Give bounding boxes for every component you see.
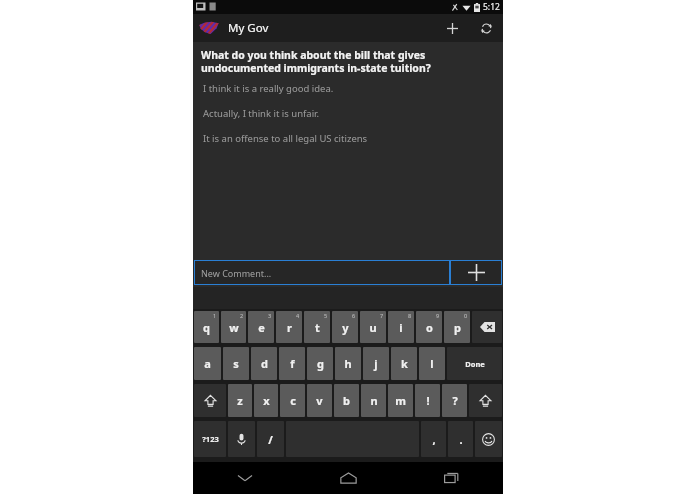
staticText: 9 — [436, 312, 440, 319]
staticText: 2 — [240, 312, 244, 319]
button[interactable]: n — [361, 384, 386, 417]
button[interactable]: ? — [442, 384, 467, 417]
button[interactable]: Voice input — [228, 421, 255, 457]
button[interactable]: c — [280, 384, 305, 417]
button[interactable]: t — [304, 311, 330, 343]
staticText: h — [344, 356, 352, 371]
staticText: / — [268, 432, 273, 447]
button[interactable]: e — [248, 311, 274, 343]
button[interactable]: y — [332, 311, 358, 343]
staticText: e — [258, 320, 265, 335]
button[interactable]: p — [444, 311, 470, 343]
button[interactable]: q — [194, 311, 219, 343]
button[interactable]: f — [279, 347, 305, 380]
staticText: n — [370, 393, 378, 408]
button[interactable]: d — [251, 347, 277, 380]
staticText: r — [287, 320, 292, 335]
button[interactable]: h — [335, 347, 361, 380]
button[interactable]: u — [360, 311, 386, 343]
button[interactable]: l — [419, 347, 445, 380]
button[interactable]: v — [307, 384, 332, 417]
staticText: z — [237, 393, 243, 408]
button[interactable]: Shift — [469, 384, 502, 417]
staticText: ?123 — [202, 434, 219, 444]
button[interactable]: s — [223, 347, 249, 380]
staticText: k — [401, 356, 408, 371]
staticText: 7 — [380, 312, 384, 319]
button[interactable]: g — [307, 347, 333, 380]
button[interactable]: Post comment — [450, 260, 502, 285]
button[interactable]: New Comment... — [194, 260, 450, 285]
staticText: m — [395, 393, 406, 408]
staticText: . — [459, 432, 463, 447]
button[interactable]: . — [448, 421, 473, 457]
staticText: 6 — [352, 312, 356, 319]
staticText: j — [374, 356, 378, 371]
button[interactable]: j — [363, 347, 389, 380]
button[interactable]: w — [221, 311, 246, 343]
staticText: ? — [452, 393, 458, 408]
button[interactable]: / — [257, 421, 284, 457]
staticText: f — [290, 356, 295, 371]
staticText: I think it is a really good idea. — [203, 82, 334, 95]
staticText: It is an offense to all legal US citizen… — [203, 132, 368, 145]
button[interactable]: o — [416, 311, 442, 343]
staticText: t — [315, 320, 320, 335]
button[interactable]: Recent apps — [400, 462, 503, 494]
staticText: i — [399, 320, 403, 335]
staticText: c — [290, 393, 296, 408]
staticText: What do you think about the bill that gi… — [201, 48, 495, 75]
button[interactable]: Refresh — [469, 14, 503, 42]
button[interactable]: Hide keyboard — [193, 462, 297, 494]
button[interactable]: It is an offense to all legal US citizen… — [201, 132, 495, 145]
staticText: , — [432, 432, 436, 447]
staticText: y — [342, 320, 349, 335]
staticText: ! — [426, 393, 430, 408]
button[interactable]: Shift — [194, 384, 226, 417]
staticText: 0 — [464, 312, 468, 319]
button[interactable]: i — [388, 311, 414, 343]
button[interactable]: Delete — [472, 311, 502, 343]
staticText: 5 — [324, 312, 328, 319]
staticText: q — [203, 320, 210, 335]
staticText: o — [426, 320, 433, 335]
staticText: g — [317, 356, 324, 371]
button[interactable]: Add — [435, 14, 469, 42]
staticText: p — [454, 320, 461, 335]
button[interactable]: a — [194, 347, 221, 380]
staticText: l — [430, 356, 434, 371]
staticText: v — [316, 393, 323, 408]
staticText: 8 — [408, 312, 412, 319]
staticText: b — [343, 393, 350, 408]
staticText: w — [229, 320, 239, 335]
button[interactable]: , — [421, 421, 446, 457]
button[interactable]: b — [334, 384, 359, 417]
button[interactable]: m — [388, 384, 413, 417]
staticText: Actually, I think it is unfair. — [203, 107, 320, 120]
button[interactable]: r — [276, 311, 302, 343]
staticText: My Gov — [228, 20, 269, 36]
button[interactable]: Emoji — [475, 421, 502, 457]
staticText: 3 — [268, 312, 272, 319]
button[interactable]: k — [391, 347, 417, 380]
staticText: 1 — [213, 312, 217, 319]
staticText: 5:12 — [483, 1, 500, 13]
staticText: 4 — [296, 312, 300, 319]
button[interactable]: I think it is a really good idea. — [201, 82, 495, 95]
staticText: u — [369, 320, 377, 335]
staticText: x — [263, 393, 270, 408]
staticText: d — [261, 356, 268, 371]
button[interactable]: ?123 — [194, 421, 226, 457]
staticText: s — [233, 356, 239, 371]
staticText: New Comment... — [201, 267, 272, 279]
staticText: Done — [465, 359, 485, 369]
button[interactable]: Home — [297, 462, 400, 494]
staticText: a — [204, 356, 211, 371]
button[interactable]: ! — [415, 384, 440, 417]
button[interactable]: z — [228, 384, 252, 417]
button[interactable]: x — [254, 384, 278, 417]
button[interactable]: Actually, I think it is unfair. — [201, 107, 495, 120]
button[interactable]: Done — [447, 347, 502, 380]
